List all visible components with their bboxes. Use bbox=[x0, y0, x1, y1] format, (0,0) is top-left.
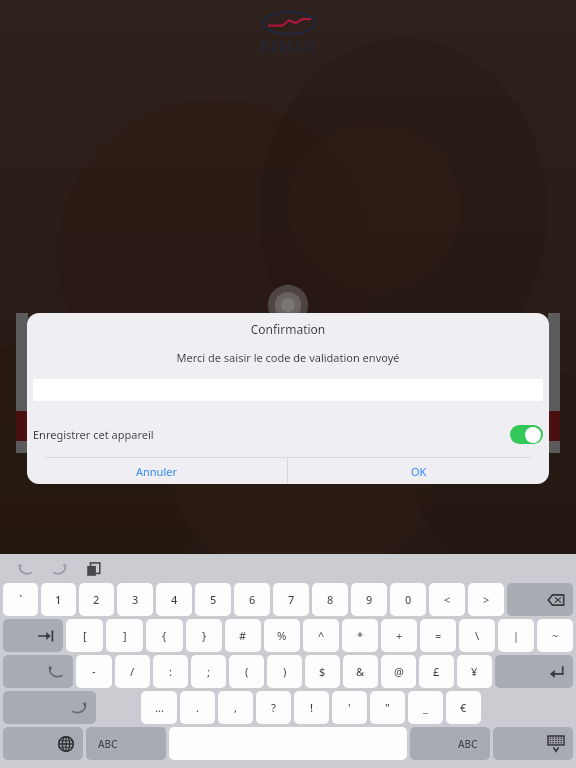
button[interactable]: . bbox=[180, 691, 215, 724]
button[interactable]: | bbox=[498, 619, 534, 652]
button[interactable]: 2 bbox=[79, 583, 114, 616]
button[interactable]: ! bbox=[294, 691, 329, 724]
staticText: < bbox=[444, 592, 451, 607]
button[interactable]: ; bbox=[191, 655, 226, 688]
staticText: ! bbox=[310, 700, 314, 715]
button[interactable]: } bbox=[186, 619, 222, 652]
staticText: 4 bbox=[171, 592, 178, 607]
staticText: * bbox=[357, 628, 364, 643]
button[interactable]: ABC bbox=[86, 727, 166, 760]
button[interactable]: ( bbox=[229, 655, 264, 688]
staticText: . bbox=[196, 700, 199, 715]
button[interactable]: Enregistrer cet appareil bbox=[510, 425, 543, 444]
button[interactable]: Paste bbox=[80, 556, 106, 582]
staticText: ¥ bbox=[471, 664, 478, 679]
staticText: # bbox=[239, 628, 247, 643]
button[interactable]: Tab bbox=[3, 619, 63, 652]
staticText: 2 bbox=[93, 592, 100, 607]
button[interactable]: 8 bbox=[312, 583, 348, 616]
button[interactable]: ^ bbox=[303, 619, 339, 652]
button[interactable]: Redo bbox=[46, 556, 72, 582]
button[interactable]: ABC bbox=[410, 727, 490, 760]
button[interactable]: Backspace bbox=[507, 583, 573, 616]
button[interactable]: _ bbox=[408, 691, 443, 724]
staticText: 5 bbox=[210, 592, 217, 607]
button[interactable]: 5 bbox=[195, 583, 231, 616]
button[interactable]: Return bbox=[495, 655, 573, 688]
staticText: ^ bbox=[318, 628, 325, 643]
button[interactable]: + bbox=[381, 619, 417, 652]
staticText: BIMAO bbox=[260, 36, 317, 56]
button[interactable]: : bbox=[153, 655, 188, 688]
staticText: , bbox=[234, 700, 238, 715]
button[interactable]: Hide keyboard bbox=[493, 727, 573, 760]
button[interactable]: ~ bbox=[537, 619, 573, 652]
staticText: ABC bbox=[458, 737, 478, 751]
button[interactable]: Annuler bbox=[27, 458, 287, 484]
staticText: ) bbox=[283, 664, 287, 679]
staticText: | bbox=[513, 628, 520, 643]
button[interactable]: = bbox=[420, 619, 456, 652]
button[interactable]: - bbox=[76, 655, 112, 688]
button[interactable]: \ bbox=[459, 619, 495, 652]
button[interactable]: % bbox=[264, 619, 300, 652]
staticText: " bbox=[385, 700, 390, 715]
button[interactable]: * bbox=[342, 619, 378, 652]
staticText: € bbox=[460, 700, 467, 715]
staticText: … bbox=[155, 700, 164, 715]
button[interactable]: ` bbox=[3, 583, 38, 616]
button[interactable]: $ bbox=[305, 655, 340, 688]
staticText: $ bbox=[319, 664, 326, 679]
button[interactable]: " bbox=[370, 691, 405, 724]
button[interactable]: / bbox=[115, 655, 150, 688]
button[interactable]: Language bbox=[3, 727, 83, 760]
button[interactable]: & bbox=[343, 655, 378, 688]
staticText: ' bbox=[348, 700, 351, 715]
staticText: ~ bbox=[552, 628, 559, 643]
staticText: \ bbox=[475, 628, 480, 643]
button[interactable]: … bbox=[141, 691, 177, 724]
button[interactable]: ) bbox=[267, 655, 302, 688]
button[interactable]: 7 bbox=[273, 583, 309, 616]
button[interactable]: ] bbox=[106, 619, 143, 652]
button[interactable]: Enregistrer cet appareil bbox=[27, 419, 549, 449]
button[interactable]: OK bbox=[288, 458, 549, 484]
staticText: % bbox=[277, 628, 287, 643]
button[interactable]: ¥ bbox=[457, 655, 492, 688]
button[interactable]: Redo bbox=[3, 691, 96, 724]
staticText: + bbox=[396, 628, 403, 643]
staticText: > bbox=[483, 592, 490, 607]
staticText: & bbox=[356, 664, 365, 679]
staticText: 7 bbox=[288, 592, 295, 607]
button[interactable]: 3 bbox=[117, 583, 153, 616]
button[interactable]: 4 bbox=[156, 583, 192, 616]
button[interactable]: < bbox=[429, 583, 465, 616]
staticText: Enregistrer cet appareil bbox=[33, 427, 154, 442]
staticText: £ bbox=[433, 664, 440, 679]
button[interactable]: £ bbox=[419, 655, 454, 688]
button[interactable]: ' bbox=[332, 691, 367, 724]
button[interactable]: , bbox=[218, 691, 253, 724]
button[interactable]: # bbox=[225, 619, 261, 652]
staticText: / bbox=[130, 664, 135, 679]
button[interactable]: 9 bbox=[351, 583, 387, 616]
staticText: = bbox=[435, 628, 442, 643]
button[interactable]: > bbox=[468, 583, 504, 616]
button[interactable]: 0 bbox=[390, 583, 426, 616]
staticText: Annuler bbox=[136, 464, 178, 479]
staticText: 3 bbox=[132, 592, 139, 607]
button[interactable]: 1 bbox=[41, 583, 76, 616]
button[interactable]: ? bbox=[256, 691, 291, 724]
button[interactable]: { bbox=[146, 619, 183, 652]
button[interactable]: Undo bbox=[3, 655, 73, 688]
staticText: ? bbox=[271, 700, 276, 715]
button[interactable]: Undo bbox=[12, 556, 38, 582]
staticText: - bbox=[92, 664, 96, 679]
button[interactable]: @ bbox=[381, 655, 416, 688]
staticText: Confirmation bbox=[27, 321, 549, 337]
button[interactable]: 6 bbox=[234, 583, 270, 616]
button[interactable]: € bbox=[446, 691, 481, 724]
button[interactable]: [ bbox=[66, 619, 103, 652]
